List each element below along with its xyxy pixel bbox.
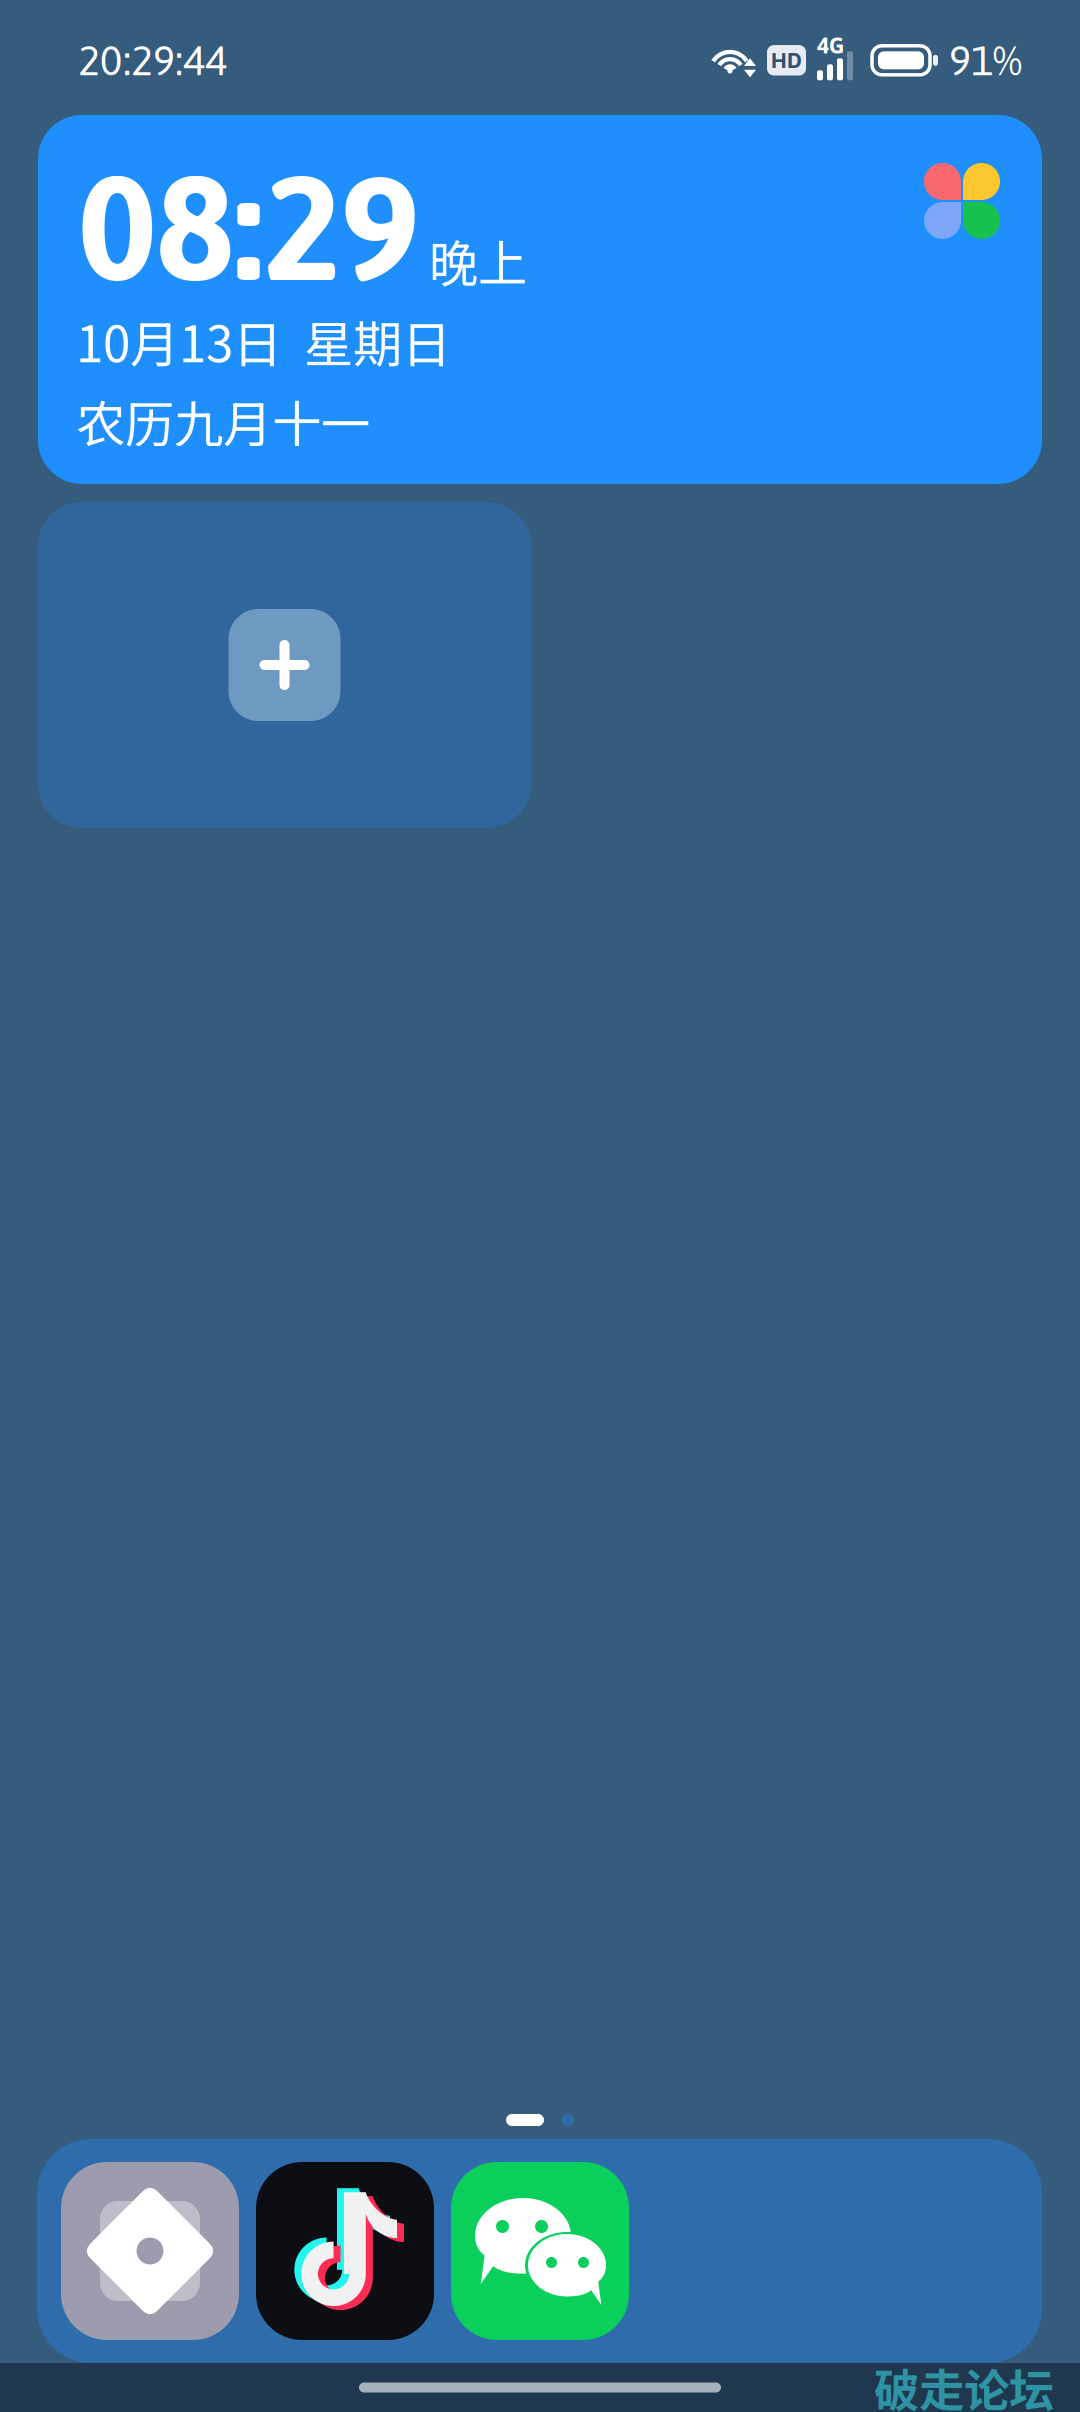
staticText: 晚上 bbox=[429, 225, 527, 296]
staticText: 4G bbox=[817, 32, 844, 58]
staticText: 20:29:44 bbox=[78, 37, 227, 84]
staticText: HD bbox=[771, 48, 802, 72]
staticText: 08:29 bbox=[78, 143, 419, 311]
button[interactable]: WeChat bbox=[451, 2162, 629, 2340]
button[interactable]: TikTok bbox=[256, 2162, 434, 2340]
button[interactable]: Add widget bbox=[38, 502, 531, 828]
staticText: 10月13日 星期日 bbox=[76, 305, 451, 376]
staticText: 破走论坛 bbox=[874, 2355, 1054, 2412]
button[interactable]: Settings bbox=[61, 2162, 239, 2340]
staticText: 农历九月十一 bbox=[76, 385, 370, 456]
staticText: 91% bbox=[949, 37, 1022, 84]
